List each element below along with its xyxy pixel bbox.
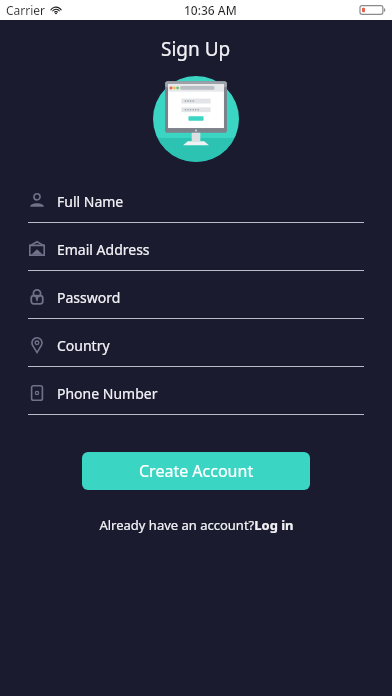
button[interactable]: Country (28, 324, 364, 372)
button[interactable]: Phone Number (28, 372, 364, 420)
staticText: Password (57, 288, 121, 307)
staticText: 10:36 AM (184, 2, 237, 18)
button[interactable]: Password (28, 276, 364, 324)
button[interactable]: Email Address (28, 228, 364, 276)
button[interactable]: Full Name (28, 180, 364, 228)
staticText: Email Address (57, 240, 150, 259)
staticText: Phone Number (57, 384, 158, 403)
staticText: Already have an account?Log in (99, 516, 294, 534)
staticText: Sign Up (161, 36, 231, 62)
staticText: Carrier (6, 2, 46, 18)
staticText: Create Account (139, 460, 254, 482)
button[interactable]: Already have an account?Log in (99, 516, 294, 534)
button[interactable]: Create Account (82, 452, 310, 490)
staticText: Country (57, 336, 110, 355)
staticText: Full Name (57, 192, 124, 211)
